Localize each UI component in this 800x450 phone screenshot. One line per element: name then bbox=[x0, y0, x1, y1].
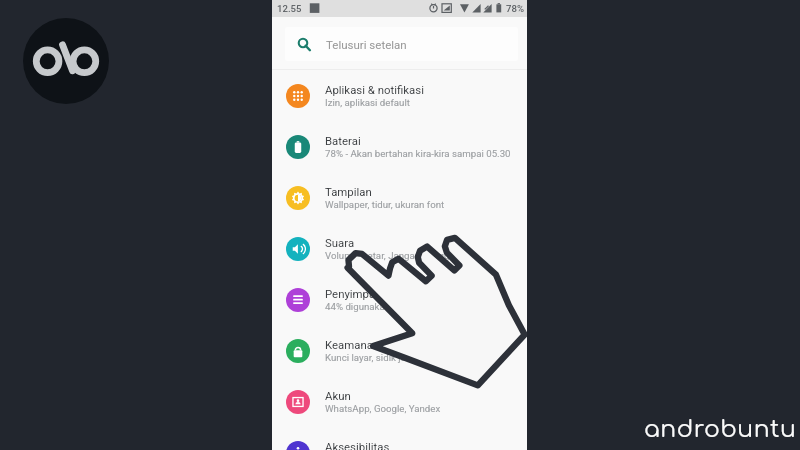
button[interactable]: Aplikasi & notifikasi bbox=[272, 70, 527, 121]
staticText: Volume, getar, Jangan ganggu bbox=[325, 250, 455, 261]
staticText: Penyimpanan bbox=[325, 287, 394, 300]
staticText: Izin, aplikasi default bbox=[325, 97, 410, 108]
staticText: Aplikasi & notifikasi bbox=[325, 83, 424, 96]
staticText: Tampilan bbox=[325, 185, 372, 198]
staticText: 78% - Akan bertahan kira-kira sampai 05.… bbox=[325, 148, 511, 159]
staticText: Aksesibilitas bbox=[325, 440, 390, 450]
staticText: Suara bbox=[325, 236, 355, 249]
staticText: Baterai bbox=[325, 134, 361, 147]
button[interactable]: Androbuntu logo bbox=[23, 18, 109, 104]
staticText: Keamanan & lokasi bbox=[325, 338, 422, 351]
button[interactable]: Aksesibilitas bbox=[272, 427, 527, 450]
staticText: androbuntu bbox=[644, 416, 797, 442]
staticText: Kunci layar, sidik jari bbox=[325, 352, 412, 363]
staticText: Wallpaper, tidur, ukuran font bbox=[325, 199, 445, 210]
button[interactable]: Telusuri setelan bbox=[285, 27, 518, 61]
button[interactable]: Suara bbox=[272, 223, 527, 274]
staticText: 78% bbox=[506, 3, 524, 14]
button[interactable]: Penyimpanan bbox=[272, 274, 527, 325]
button[interactable]: Baterai bbox=[272, 121, 527, 172]
staticText: Akun bbox=[325, 389, 351, 402]
button[interactable]: Akun bbox=[272, 376, 527, 427]
staticText: WhatsApp, Google, Yandex bbox=[325, 403, 441, 414]
staticText: 12.55 bbox=[277, 3, 302, 14]
staticText: Telusuri setelan bbox=[326, 38, 407, 51]
button[interactable]: Keamanan & lokasi bbox=[272, 325, 527, 376]
button[interactable]: Tampilan bbox=[272, 172, 527, 223]
staticText: 44% digunakan - 17,88 GB bebas bbox=[325, 301, 466, 312]
